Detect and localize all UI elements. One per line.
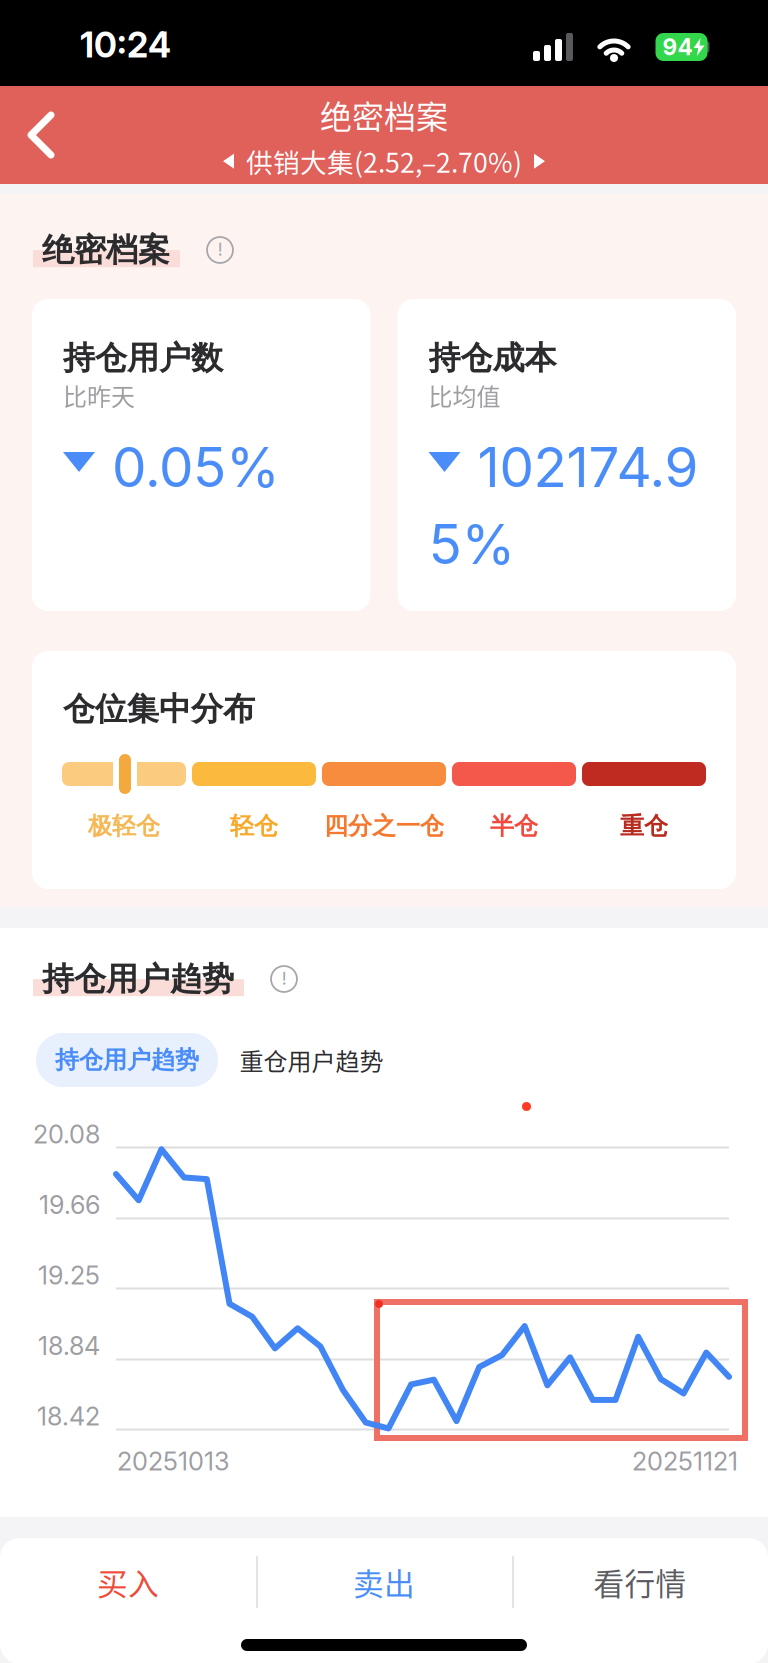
staticText: 供销大集(2.52,–2.70%) bbox=[246, 142, 522, 180]
staticText: ! bbox=[217, 238, 222, 260]
staticText: 极轻仓 bbox=[88, 811, 160, 841]
staticText: ! bbox=[281, 967, 286, 989]
staticText: 18.84 bbox=[38, 1330, 100, 1361]
staticText: 重仓 bbox=[620, 811, 668, 841]
staticText: 5% bbox=[428, 511, 515, 577]
button[interactable]: Info bbox=[253, 957, 315, 1001]
staticText: 持仓成本 bbox=[428, 338, 556, 378]
staticText: 比昨天 bbox=[63, 378, 135, 413]
staticText: 20251121 bbox=[632, 1446, 738, 1477]
staticText: 仓位集中分布 bbox=[63, 689, 255, 729]
staticText: 持仓用户趋势 bbox=[55, 1045, 199, 1075]
staticText: 19.25 bbox=[38, 1260, 100, 1291]
staticText: 重仓用户趋势 bbox=[239, 1043, 383, 1077]
staticText: 看行情 bbox=[593, 1560, 686, 1604]
staticText: 轻仓 bbox=[230, 811, 278, 841]
staticText: 102174.9 bbox=[477, 434, 698, 500]
button[interactable]: Info bbox=[189, 228, 251, 272]
staticText: 持仓用户数 bbox=[63, 338, 223, 378]
staticText: 18.42 bbox=[37, 1401, 100, 1432]
staticText: 19.66 bbox=[39, 1189, 100, 1220]
button[interactable]: 卖出 bbox=[256, 1534, 512, 1630]
staticText: 0.05% bbox=[112, 434, 280, 500]
button[interactable]: 买入 bbox=[0, 1534, 256, 1630]
button[interactable]: 看行情 bbox=[512, 1534, 768, 1630]
staticText: 卖出 bbox=[353, 1560, 415, 1604]
button[interactable]: 重仓用户趋势 bbox=[218, 1033, 405, 1087]
staticText: 20.08 bbox=[33, 1119, 100, 1150]
staticText: 四分之一仓 bbox=[324, 811, 444, 841]
staticText: 买入 bbox=[97, 1560, 159, 1604]
button[interactable]: Back bbox=[0, 88, 82, 182]
staticText: 比均值 bbox=[428, 378, 500, 413]
staticText: 绝密档案 bbox=[320, 91, 448, 138]
staticText: 绝密档案 bbox=[42, 230, 170, 270]
staticText: 94 bbox=[662, 33, 692, 61]
staticText: 20251013 bbox=[117, 1446, 230, 1477]
staticText: 半仓 bbox=[490, 811, 538, 841]
button[interactable]: 持仓用户趋势 bbox=[36, 1033, 218, 1087]
staticText: 持仓用户趋势 bbox=[42, 959, 234, 999]
staticText: 10:24 bbox=[80, 24, 171, 66]
